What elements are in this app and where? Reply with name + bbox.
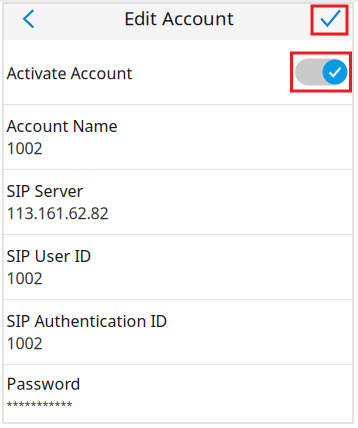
button[interactable]: Save (309, 5, 349, 35)
button[interactable]: Account Name (3, 105, 352, 169)
staticText: SIP Server (6, 180, 83, 201)
button[interactable]: SIP User ID (3, 235, 352, 299)
button[interactable]: Activate Account (3, 40, 352, 104)
staticText: 113.161.62.82 (6, 202, 108, 224)
staticText: 1002 (6, 332, 42, 354)
staticText: SIP Authentication ID (6, 310, 167, 331)
staticText: 1002 (6, 137, 42, 159)
staticText: *********** (6, 398, 72, 412)
button[interactable]: Password (3, 365, 352, 428)
staticText: Edit Account (124, 6, 234, 30)
staticText: 1002 (6, 267, 42, 289)
staticText: Activate Account (6, 62, 132, 84)
staticText: Account Name (6, 115, 117, 136)
button[interactable]: SIP Authentication ID (3, 300, 352, 364)
button[interactable]: Back (11, 4, 45, 34)
button[interactable]: SIP Server (3, 170, 352, 234)
staticText: Password (6, 373, 80, 394)
staticText: SIP User ID (6, 245, 91, 266)
